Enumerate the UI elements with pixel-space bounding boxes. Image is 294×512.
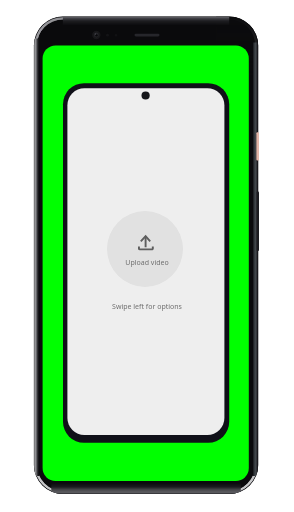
staticText: Swipe left for options [112, 302, 182, 312]
button[interactable]: Upload video [107, 211, 183, 287]
staticText: Upload video [125, 258, 169, 268]
